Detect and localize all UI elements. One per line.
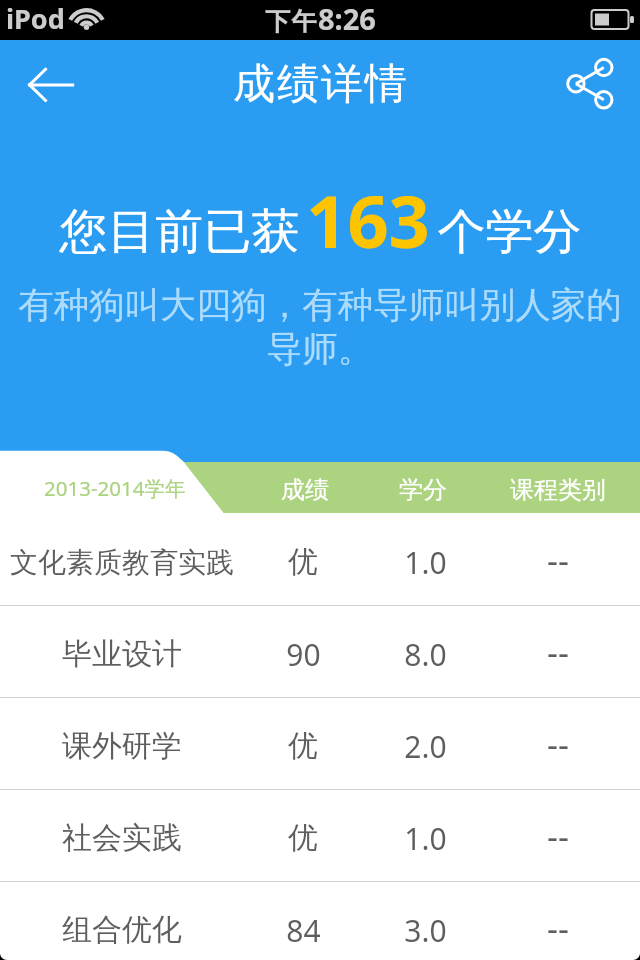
staticText: -- [547, 537, 569, 583]
staticText: iPod [6, 0, 65, 37]
staticText: 3.0 [404, 910, 447, 951]
button[interactable]: 文化素质教育实践 [0, 513, 640, 605]
staticText: -- [547, 629, 569, 675]
staticText: 组合优化 [62, 911, 182, 949]
staticText: 成绩 [281, 475, 329, 505]
staticText: 84 [286, 910, 321, 951]
staticText: -- [547, 813, 569, 859]
button[interactable]: 毕业设计 [0, 605, 640, 697]
staticText: 成绩详情 [232, 58, 408, 111]
staticText: 1.0 [404, 818, 447, 859]
staticText: 课外研学 [62, 727, 182, 765]
staticText: 90 [286, 634, 321, 675]
staticText: 文化素质教育实践 [10, 545, 234, 580]
button[interactable]: Share [552, 44, 640, 124]
button[interactable]: 课外研学 [0, 697, 640, 789]
staticText: 毕业设计 [62, 635, 182, 673]
staticText: 优 [288, 819, 318, 857]
button[interactable]: Back [6, 44, 94, 124]
staticText: 学分 [399, 475, 447, 505]
staticText: 优 [288, 543, 318, 581]
staticText: 您目前已获 163 个学分 [59, 171, 582, 269]
staticText: 2.0 [404, 726, 447, 767]
staticText: -- [547, 905, 569, 951]
staticText: 有种狗叫大四狗，有种导师叫别人家的导师。 [8, 283, 632, 371]
staticText: -- [547, 721, 569, 767]
staticText: 下午8:26 [265, 0, 376, 38]
staticText: 1.0 [404, 542, 447, 583]
staticText: 社会实践 [62, 819, 182, 857]
button[interactable]: 组合优化 [0, 881, 640, 960]
staticText: 课程类别 [510, 475, 606, 505]
staticText: 2013-2014学年 [44, 474, 186, 502]
button[interactable]: 社会实践 [0, 789, 640, 881]
staticText: 优 [288, 727, 318, 765]
staticText: 8.0 [404, 634, 447, 675]
